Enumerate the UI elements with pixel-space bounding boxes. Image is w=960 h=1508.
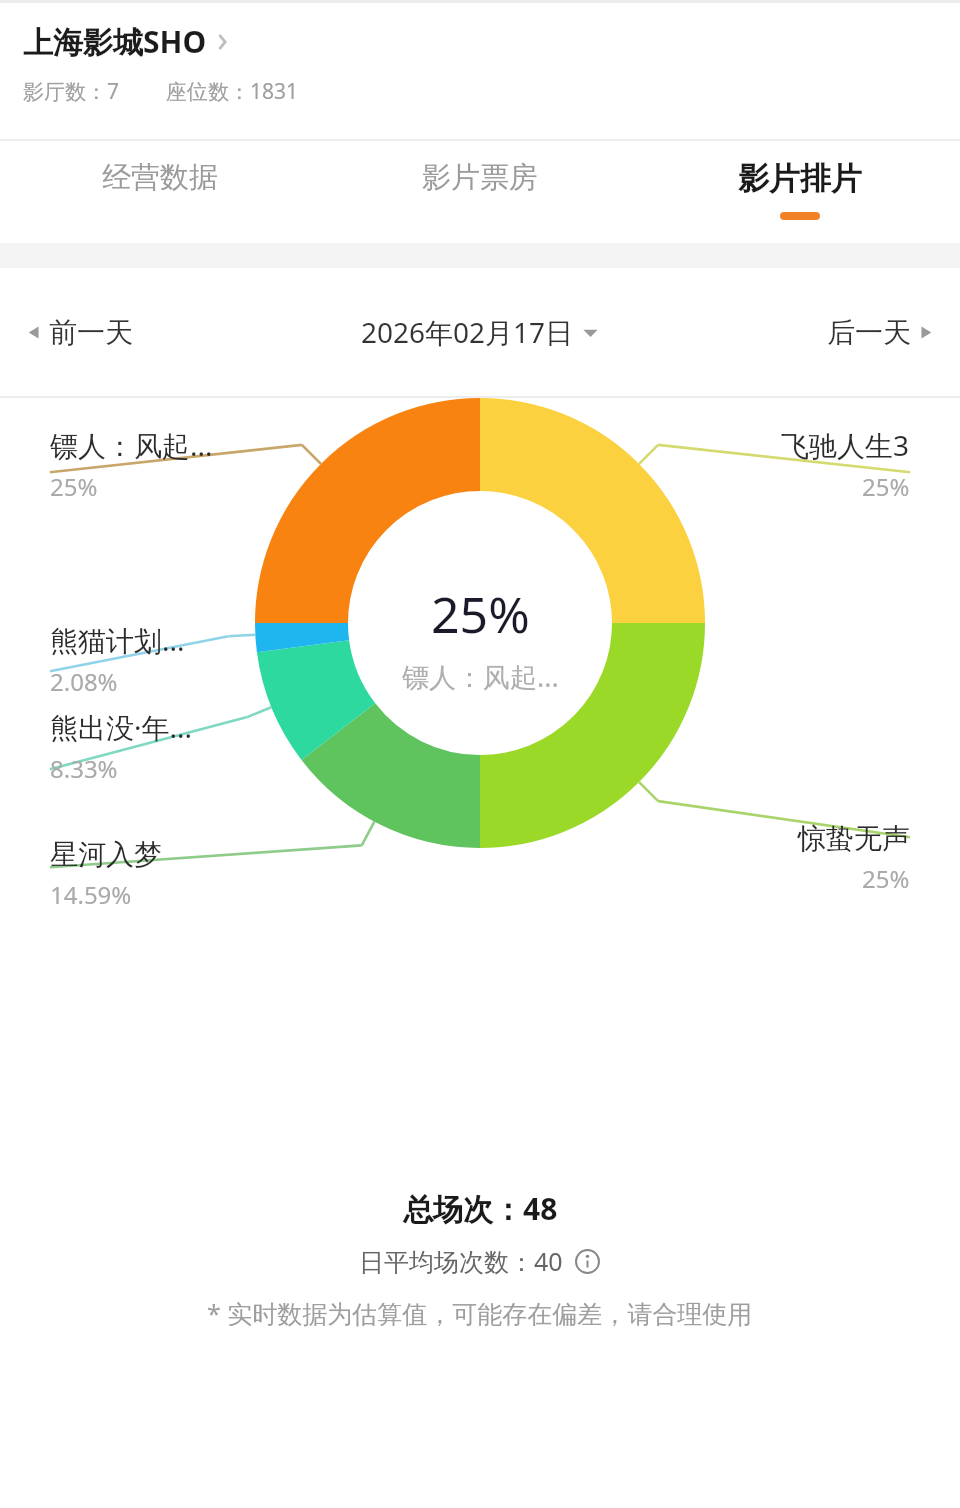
staticText: 星河入梦 <box>50 837 162 872</box>
staticText: 镖人：风起... <box>50 426 213 464</box>
staticText: 2026年02月17日 <box>361 313 574 351</box>
staticText: 总场次：48 <box>403 1188 558 1229</box>
staticText: 14.59% <box>50 878 132 911</box>
staticText: 上海影城SHO <box>23 21 207 62</box>
button[interactable]: 前一天 <box>20 309 139 356</box>
staticText: 熊出没·年... <box>50 708 193 746</box>
button[interactable]: 上海影城SHO <box>23 21 246 62</box>
staticText: 8.33% <box>50 752 118 785</box>
staticText: 影片票房 <box>422 159 538 196</box>
staticText: 座位数：1831 <box>166 77 299 106</box>
staticText: * 实时数据为估算值，可能存在偏差，请合理使用 <box>207 1296 753 1330</box>
staticText: 后一天 <box>827 315 911 350</box>
button[interactable]: 影片排片 <box>640 141 960 243</box>
button[interactable]: 后一天 <box>821 309 940 356</box>
staticText: 25% <box>862 470 910 503</box>
staticText: 经营数据 <box>102 159 218 196</box>
button[interactable]: 2026年02月17日 <box>355 307 605 357</box>
staticText: 影厅数：7 <box>23 77 120 106</box>
staticText: 25% <box>50 470 98 503</box>
staticText: 影片排片 <box>738 159 862 198</box>
staticText: 惊蛰无声 <box>798 821 910 856</box>
staticText: 熊猫计划... <box>50 621 185 659</box>
button[interactable]: 说明 <box>574 1248 601 1275</box>
staticText: 日平均场次数：40 <box>359 1244 563 1278</box>
staticText: 前一天 <box>49 315 133 350</box>
staticText: 飞驰人生3 <box>781 426 910 464</box>
button[interactable]: 影片票房 <box>320 141 640 243</box>
staticText: 镖人：风起... <box>402 658 559 695</box>
staticText: 2.08% <box>50 665 118 698</box>
button[interactable]: 经营数据 <box>0 141 320 243</box>
staticText: 25% <box>431 580 530 648</box>
staticText: 25% <box>862 862 910 895</box>
